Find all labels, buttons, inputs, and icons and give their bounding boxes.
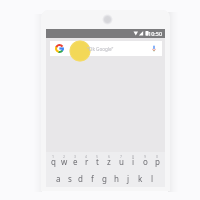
staticText: "Ok Google" xyxy=(87,46,114,52)
button[interactable]: g xyxy=(98,173,110,184)
staticText: 6 xyxy=(108,154,111,159)
staticText: l xyxy=(151,173,154,184)
staticText: k xyxy=(138,173,143,184)
button[interactable]: i xyxy=(127,156,139,167)
button[interactable]: q xyxy=(48,156,59,167)
button[interactable]: t xyxy=(92,156,103,167)
staticText: 1 xyxy=(52,154,55,159)
staticText: g xyxy=(102,173,107,184)
staticText: t xyxy=(96,156,99,167)
staticText: e xyxy=(73,156,78,167)
staticText: j xyxy=(127,173,130,184)
button[interactable]: h xyxy=(110,173,122,184)
staticText: h xyxy=(114,173,119,184)
staticText: u xyxy=(119,156,124,167)
staticText: w xyxy=(61,156,68,167)
staticText: s xyxy=(68,173,72,184)
staticText: r xyxy=(85,156,89,167)
button[interactable]: s xyxy=(64,173,75,184)
button[interactable]: r xyxy=(81,156,92,167)
staticText: d xyxy=(78,173,83,184)
button[interactable]: w xyxy=(59,156,70,167)
button[interactable]: l xyxy=(146,173,158,184)
staticText: 8 xyxy=(132,154,135,159)
staticText: 7 xyxy=(120,154,123,159)
staticText: a xyxy=(56,173,61,184)
staticText: 2 xyxy=(63,154,66,159)
button[interactable]: a xyxy=(53,173,64,184)
staticText: q xyxy=(51,156,56,167)
staticText: f xyxy=(91,173,94,184)
staticText: p xyxy=(155,156,160,167)
button[interactable]: f xyxy=(86,173,98,184)
staticText: 10:50 xyxy=(148,30,163,37)
button[interactable]: e xyxy=(70,156,81,167)
button[interactable] xyxy=(50,41,162,56)
button[interactable]: o xyxy=(139,156,151,167)
button[interactable]: d xyxy=(75,173,86,184)
other: Voice search xyxy=(152,45,156,52)
staticText: o xyxy=(143,156,148,167)
button[interactable]: u xyxy=(115,156,127,167)
button[interactable]: k xyxy=(134,173,146,184)
staticText: 3 xyxy=(74,154,77,159)
button[interactable]: z xyxy=(103,156,115,167)
staticText: z xyxy=(107,156,111,167)
staticText: 4 xyxy=(85,154,88,159)
staticText: 5 xyxy=(96,154,99,159)
button[interactable]: p xyxy=(151,156,163,167)
staticText: 9 xyxy=(144,154,147,159)
staticText: i xyxy=(132,156,135,167)
staticText: 0 xyxy=(156,154,159,159)
button[interactable]: j xyxy=(122,173,134,184)
